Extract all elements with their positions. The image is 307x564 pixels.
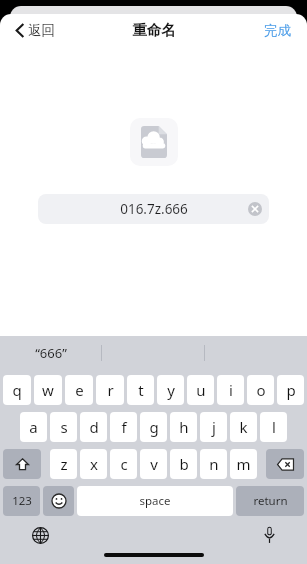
- staticText: c: [120, 454, 128, 474]
- staticText: q: [12, 380, 22, 400]
- button[interactable]: Dictation: [257, 523, 281, 547]
- button[interactable]: x: [80, 449, 107, 479]
- button[interactable]: Shift: [3, 449, 41, 479]
- staticText: g: [149, 417, 159, 437]
- button[interactable]: u: [187, 375, 214, 405]
- staticText: f: [121, 417, 127, 437]
- button[interactable]: Clear text: [248, 202, 262, 216]
- staticText: s: [60, 417, 68, 437]
- staticText: e: [75, 380, 84, 400]
- staticText: 返回: [28, 22, 55, 39]
- staticText: u: [196, 380, 206, 400]
- staticText: k: [239, 417, 248, 437]
- button[interactable]: i: [217, 375, 244, 405]
- staticText: r: [107, 380, 114, 400]
- staticText: a: [29, 417, 38, 437]
- button[interactable]: Backspace: [266, 449, 304, 479]
- button[interactable]: Emoji: [43, 486, 74, 516]
- staticText: l: [272, 417, 276, 437]
- staticText: z: [60, 454, 68, 474]
- button[interactable]: k: [230, 412, 257, 442]
- button[interactable]: l: [260, 412, 287, 442]
- button[interactable]: t: [127, 375, 154, 405]
- staticText: v: [150, 454, 158, 474]
- button[interactable]: n: [200, 449, 227, 479]
- button[interactable]: d: [80, 412, 107, 442]
- staticText: “666”: [35, 344, 67, 362]
- staticText: 重命名: [132, 21, 176, 39]
- button[interactable]: b: [170, 449, 197, 479]
- button[interactable]: j: [200, 412, 227, 442]
- staticText: t: [138, 380, 144, 400]
- staticText: h: [179, 417, 189, 437]
- button[interactable]: g: [140, 412, 167, 442]
- button[interactable]: 完成: [260, 18, 295, 43]
- staticText: j: [212, 417, 216, 437]
- staticText: space: [139, 493, 171, 509]
- button[interactable]: m: [230, 449, 257, 479]
- button[interactable]: Switch keyboard: [28, 523, 52, 547]
- button[interactable]: y: [157, 375, 184, 405]
- button[interactable]: h: [170, 412, 197, 442]
- staticText: b: [179, 454, 189, 474]
- button[interactable]: “666”: [0, 336, 101, 370]
- staticText: 016.7z.666: [120, 200, 188, 218]
- button[interactable]: return: [236, 486, 304, 516]
- staticText: 完成: [264, 22, 291, 39]
- button[interactable]: 返回: [12, 18, 59, 43]
- button[interactable]: e: [65, 375, 93, 405]
- staticText: d: [89, 417, 99, 437]
- staticText: i: [229, 380, 233, 400]
- button[interactable]: space: [77, 486, 233, 516]
- staticText: y: [167, 380, 175, 400]
- staticText: o: [256, 380, 266, 400]
- button[interactable]: a: [20, 412, 47, 442]
- button[interactable]: p: [277, 375, 304, 405]
- staticText: 123: [12, 493, 32, 509]
- button[interactable]: q: [3, 375, 31, 405]
- button[interactable]: w: [34, 375, 62, 405]
- staticText: n: [209, 454, 219, 474]
- button[interactable]: v: [140, 449, 167, 479]
- staticText: w: [42, 380, 54, 400]
- staticText: m: [236, 454, 251, 474]
- button[interactable]: f: [110, 412, 137, 442]
- staticText: p: [286, 380, 296, 400]
- button[interactable]: r: [96, 375, 124, 405]
- button[interactable]: z: [50, 449, 77, 479]
- button[interactable]: c: [110, 449, 137, 479]
- button[interactable]: 123: [3, 486, 40, 516]
- button[interactable]: o: [247, 375, 274, 405]
- staticText: return: [253, 493, 288, 509]
- button[interactable]: 016.7z.666: [38, 194, 269, 224]
- staticText: x: [90, 454, 98, 474]
- button[interactable]: s: [50, 412, 77, 442]
